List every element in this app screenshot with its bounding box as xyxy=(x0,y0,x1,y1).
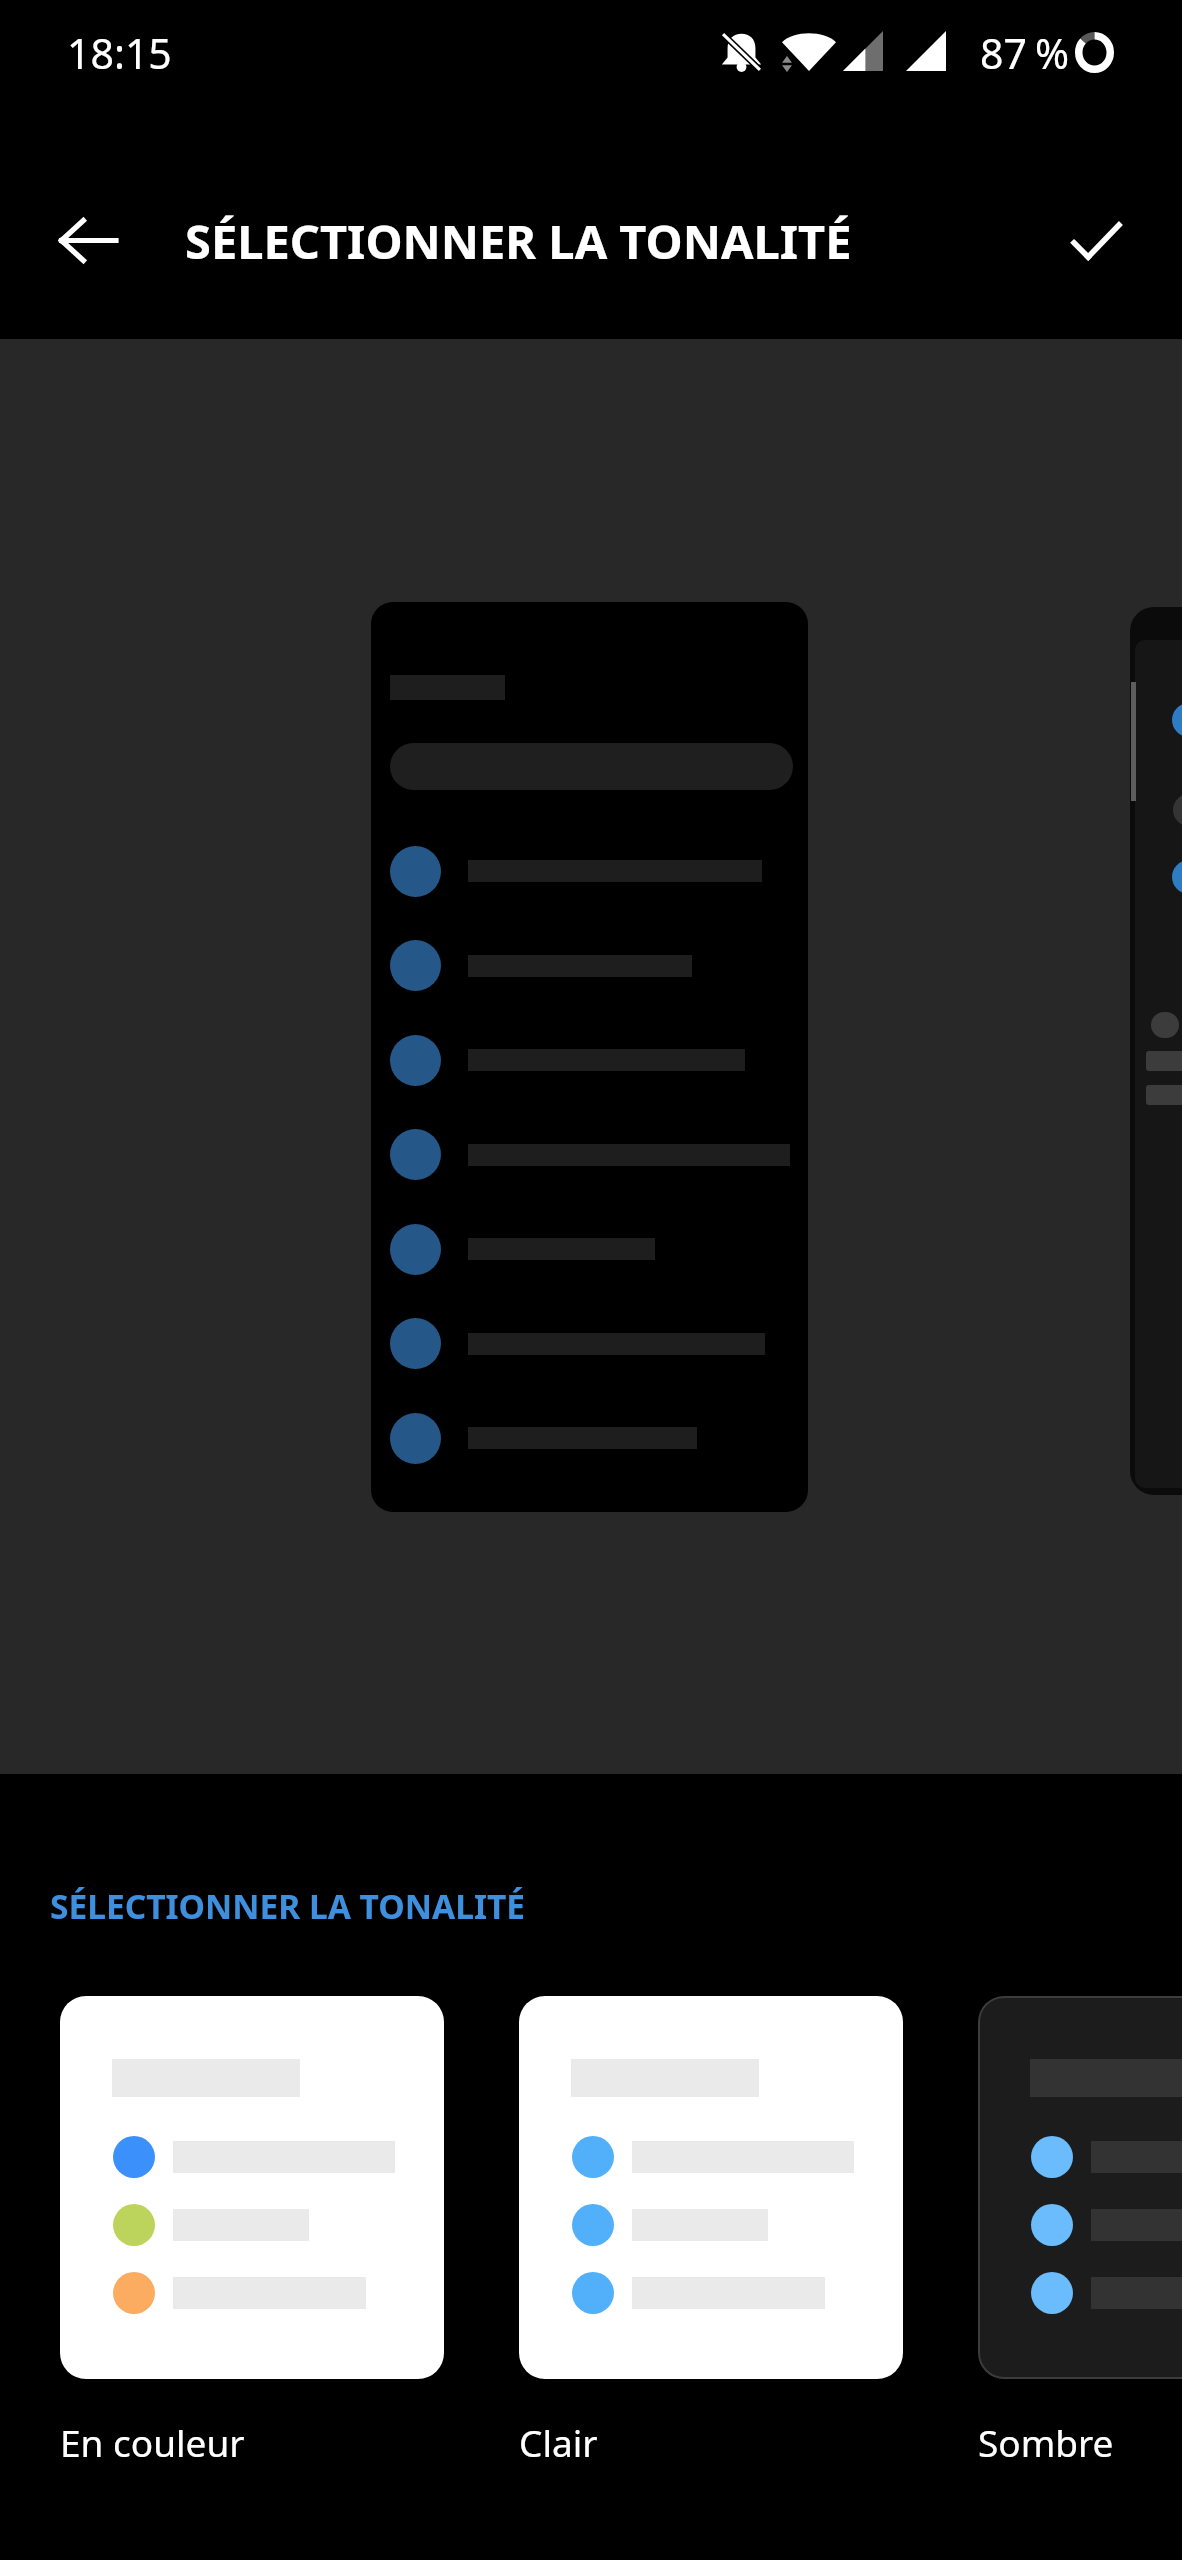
staticText: 87 xyxy=(980,25,1027,81)
staticText: SÉLECTIONNER LA TONALITÉ xyxy=(185,209,852,273)
button[interactable]: Confirm xyxy=(1048,193,1144,289)
staticText: 18:15 xyxy=(67,25,172,81)
staticText: SÉLECTIONNER LA TONALITÉ xyxy=(50,1883,526,1929)
button[interactable]: Clair xyxy=(519,1996,903,2467)
staticText: En couleur xyxy=(60,2417,245,2467)
staticText: Clair xyxy=(519,2417,598,2467)
button[interactable] xyxy=(371,602,808,1512)
button[interactable]: En couleur xyxy=(60,1996,444,2467)
staticText: Sombre xyxy=(978,2417,1114,2467)
button[interactable]: Back xyxy=(40,192,136,288)
button[interactable] xyxy=(1130,607,1182,1495)
staticText: % xyxy=(1035,25,1070,81)
button[interactable]: Sombre xyxy=(978,1996,1182,2467)
